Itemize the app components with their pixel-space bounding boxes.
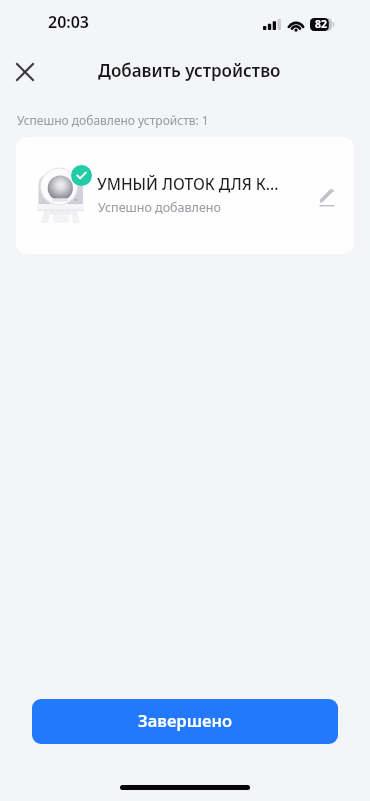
staticText: УМНЫЙ ЛОТОК ДЛЯ К... bbox=[97, 173, 297, 194]
staticText: Завершено bbox=[138, 709, 233, 731]
button[interactable]: Close bbox=[3, 50, 47, 94]
staticText: 82 bbox=[315, 17, 328, 31]
staticText: Успешно добавлено устройств: 1 bbox=[17, 112, 209, 128]
button[interactable]: УМНЫЙ ЛОТОК ДЛЯ К... bbox=[16, 137, 354, 254]
staticText: Успешно добавлено bbox=[98, 199, 221, 216]
button[interactable]: Завершено bbox=[32, 699, 338, 744]
staticText: 20:03 bbox=[48, 11, 90, 33]
button[interactable]: Edit device name bbox=[308, 177, 346, 215]
staticText: Добавить устройство bbox=[98, 59, 281, 82]
